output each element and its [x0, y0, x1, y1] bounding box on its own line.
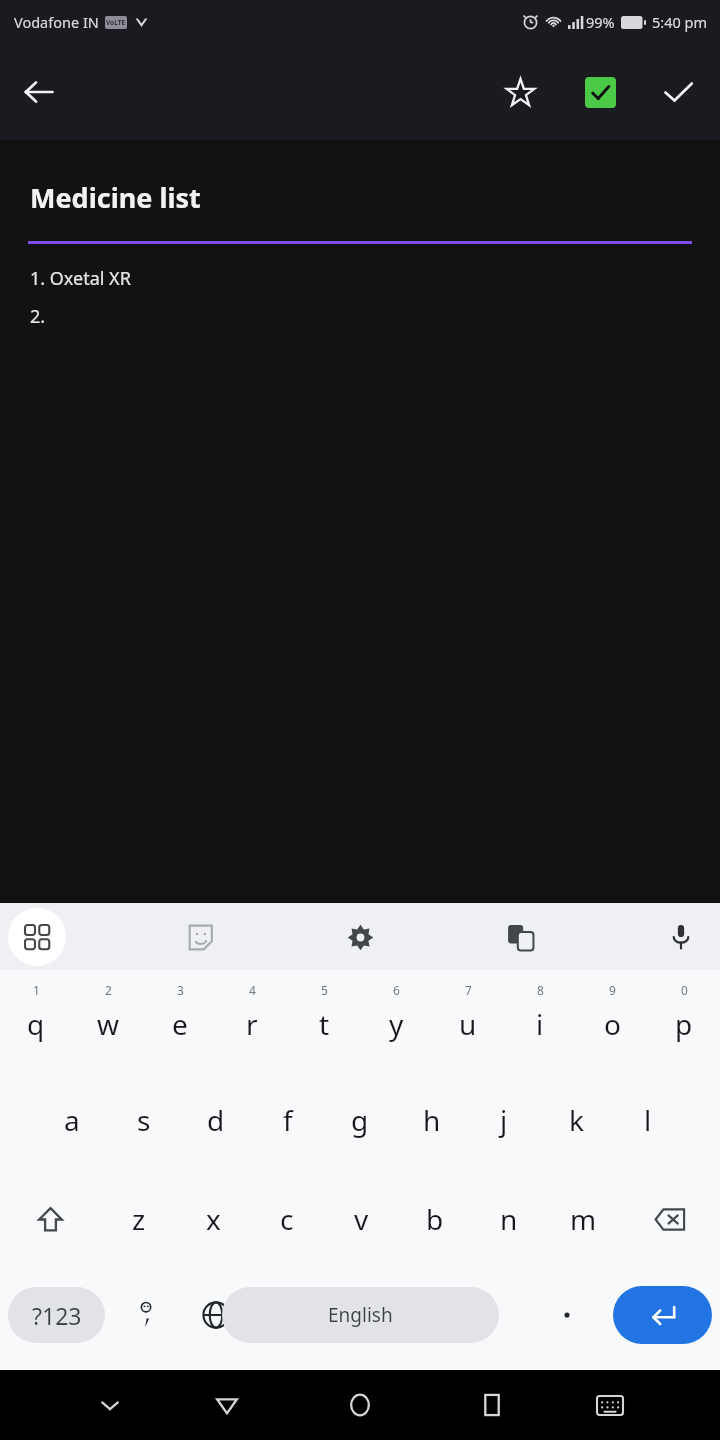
staticText: r: [246, 1005, 258, 1043]
staticText: f: [283, 1101, 293, 1139]
staticText: 6: [393, 982, 400, 998]
staticText: VoLTE: [106, 18, 126, 27]
staticText: 2: [105, 982, 112, 998]
button[interactable]: Toolbox: [8, 908, 66, 966]
button[interactable]: Save: [650, 64, 706, 120]
button[interactable]: 8: [504, 970, 576, 1070]
staticText: h: [423, 1101, 441, 1139]
staticText: w: [97, 1005, 120, 1043]
staticText: x: [206, 1200, 221, 1238]
button[interactable]: f: [252, 1070, 324, 1170]
staticText: 1. Oxetal XR: [30, 266, 131, 291]
staticText: 7: [465, 982, 472, 998]
staticText: l: [644, 1101, 652, 1139]
staticText: k: [569, 1101, 584, 1139]
button[interactable]: v: [324, 1170, 398, 1268]
staticText: q: [27, 1005, 45, 1043]
button[interactable]: 4: [216, 970, 288, 1070]
staticText: u: [459, 1005, 477, 1043]
button[interactable]: Switch keyboard: [582, 1377, 638, 1433]
staticText: z: [132, 1200, 146, 1238]
staticText: j: [500, 1101, 508, 1139]
staticText: English: [328, 1302, 393, 1328]
button[interactable]: 0: [648, 970, 720, 1070]
staticText: t: [319, 1005, 330, 1043]
button[interactable]: n: [472, 1170, 546, 1268]
button[interactable]: Home: [332, 1377, 388, 1433]
button[interactable]: Voice input: [652, 908, 710, 966]
staticText: i: [536, 1005, 544, 1043]
button[interactable]: 1. Oxetal XR: [0, 266, 720, 329]
button[interactable]: Hide keyboard: [82, 1377, 138, 1433]
button[interactable]: Checklist: [572, 64, 628, 120]
button[interactable]: j: [468, 1070, 540, 1170]
button[interactable]: Shift: [0, 1170, 101, 1268]
button[interactable]: Enter: [613, 1286, 712, 1344]
button[interactable]: g: [324, 1070, 396, 1170]
button[interactable]: c: [250, 1170, 324, 1268]
button[interactable]: Back: [10, 63, 68, 121]
button[interactable]: m: [546, 1170, 620, 1268]
staticText: 99%: [586, 12, 615, 32]
button[interactable]: Change language: [188, 1287, 244, 1343]
staticText: d: [207, 1101, 225, 1139]
button[interactable]: Stickers: [171, 908, 229, 966]
button[interactable]: 5: [288, 970, 360, 1070]
staticText: y: [389, 1005, 404, 1043]
staticText: 5: [321, 982, 328, 998]
staticText: 0: [681, 982, 688, 998]
staticText: a: [64, 1101, 80, 1139]
button[interactable]: Recents: [464, 1377, 520, 1433]
staticText: 9: [609, 982, 616, 998]
button[interactable]: Comma and emoji: [118, 1287, 174, 1343]
button[interactable]: k: [540, 1070, 612, 1170]
staticText: p: [675, 1005, 693, 1043]
button[interactable]: 9: [576, 970, 648, 1070]
button[interactable]: 1: [0, 970, 72, 1070]
button[interactable]: d: [180, 1070, 252, 1170]
button[interactable]: s: [108, 1070, 180, 1170]
staticText: m: [570, 1200, 597, 1238]
staticText: g: [351, 1101, 369, 1139]
staticText: b: [426, 1200, 444, 1238]
button[interactable]: Period: [542, 1290, 592, 1340]
staticText: v: [354, 1200, 369, 1238]
staticText: e: [172, 1005, 188, 1043]
staticText: 3: [177, 982, 184, 998]
button[interactable]: b: [398, 1170, 472, 1268]
staticText: s: [137, 1101, 151, 1139]
button[interactable]: z: [101, 1170, 176, 1268]
button[interactable]: Back: [199, 1377, 255, 1433]
button[interactable]: a: [36, 1070, 108, 1170]
staticText: Vodafone IN: [14, 12, 99, 32]
staticText: ?123: [32, 1300, 82, 1331]
staticText: o: [604, 1005, 621, 1043]
staticText: n: [500, 1200, 518, 1238]
button[interactable]: ?123: [8, 1287, 105, 1343]
staticText: 4: [249, 982, 256, 998]
button[interactable]: Medicine list: [30, 179, 201, 216]
button[interactable]: 2: [72, 970, 144, 1070]
button[interactable]: 7: [432, 970, 504, 1070]
button[interactable]: Settings: [331, 908, 389, 966]
button[interactable]: Backspace: [620, 1170, 720, 1268]
button[interactable]: Favorite: [492, 64, 548, 120]
staticText: 2.: [30, 304, 46, 329]
button[interactable]: 3: [144, 970, 216, 1070]
staticText: 5:40 pm: [652, 12, 708, 32]
button[interactable]: 6: [360, 970, 432, 1070]
staticText: c: [280, 1200, 294, 1238]
button[interactable]: h: [396, 1070, 468, 1170]
button[interactable]: Translate: [491, 908, 549, 966]
button[interactable]: x: [176, 1170, 250, 1268]
staticText: 1: [33, 982, 40, 998]
button[interactable]: l: [612, 1070, 684, 1170]
staticText: 8: [537, 982, 544, 998]
button[interactable]: English: [222, 1287, 499, 1343]
